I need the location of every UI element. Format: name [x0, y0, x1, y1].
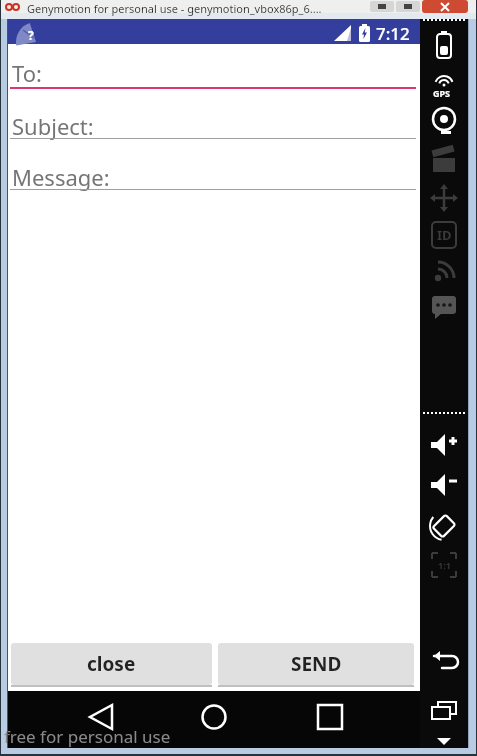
- staticText: ID: [437, 226, 452, 244]
- staticText: Genymotion for personal use - genymotion…: [27, 1, 322, 16]
- staticText: 7:12: [376, 22, 410, 45]
- staticText: SEND: [291, 651, 342, 677]
- button[interactable]: [78, 695, 132, 739]
- staticText: GPS: [433, 87, 451, 99]
- staticText: free for personal use: [4, 725, 171, 748]
- button[interactable]: [396, 1, 420, 12]
- staticText: 1:1: [438, 559, 451, 571]
- button[interactable]: SEND: [218, 643, 414, 685]
- button[interactable]: 1:1: [430, 551, 458, 579]
- button[interactable]: GPS: [430, 70, 458, 102]
- button[interactable]: [430, 184, 458, 214]
- staticText: To:: [12, 58, 42, 88]
- button[interactable]: [430, 148, 458, 176]
- button[interactable]: [422, 0, 468, 13]
- button[interactable]: [187, 695, 241, 739]
- button[interactable]: close: [11, 643, 212, 685]
- staticText: close: [87, 651, 136, 677]
- button[interactable]: [428, 512, 460, 542]
- button[interactable]: [428, 698, 460, 726]
- button[interactable]: [303, 695, 357, 739]
- button[interactable]: [370, 1, 394, 12]
- button[interactable]: [430, 292, 458, 322]
- button[interactable]: ID: [430, 220, 458, 250]
- staticText: Subject:: [12, 111, 94, 141]
- staticText: Message:: [12, 162, 110, 192]
- button[interactable]: [430, 256, 458, 286]
- staticText: ?: [28, 27, 34, 43]
- button[interactable]: [430, 30, 458, 60]
- button[interactable]: [428, 432, 460, 462]
- button[interactable]: [428, 472, 460, 502]
- button[interactable]: [430, 106, 458, 138]
- button[interactable]: [428, 646, 460, 676]
